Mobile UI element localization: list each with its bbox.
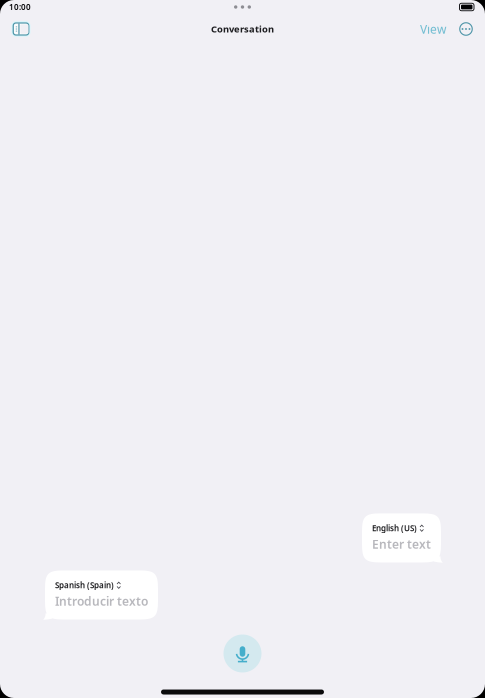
staticText: View bbox=[420, 21, 446, 37]
staticText: Spanish (Spain) bbox=[55, 580, 114, 590]
staticText: Conversation bbox=[211, 23, 274, 35]
button[interactable]: Record bbox=[216, 627, 268, 679]
staticText: 10:00 bbox=[9, 2, 31, 12]
button[interactable]: View bbox=[413, 17, 453, 41]
button[interactable]: English (US) bbox=[0, 513, 485, 562]
staticText: Enter text bbox=[372, 536, 431, 552]
button[interactable]: More bbox=[455, 17, 477, 41]
button[interactable]: Show Sidebar bbox=[5, 17, 37, 41]
staticText: Introducir texto bbox=[55, 593, 148, 609]
staticText: English (US) bbox=[372, 523, 417, 533]
button[interactable]: Spanish (Spain) bbox=[0, 570, 485, 619]
